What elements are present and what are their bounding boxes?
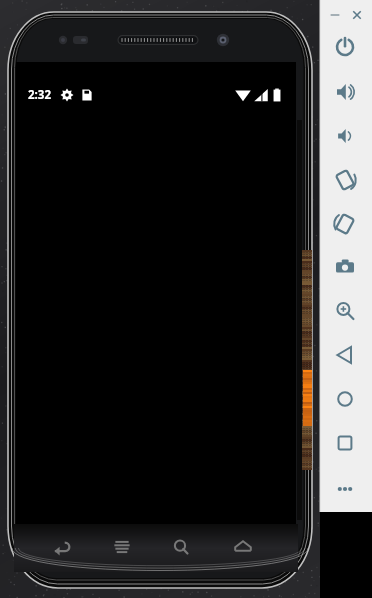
button[interactable]: Search bbox=[152, 524, 210, 572]
button[interactable]: Minimize bbox=[326, 4, 346, 26]
button[interactable]: Volume up bbox=[322, 70, 372, 114]
button[interactable]: Volume down bbox=[322, 114, 372, 158]
button[interactable]: Home bbox=[322, 377, 372, 421]
button[interactable]: Home bbox=[212, 524, 296, 572]
button[interactable]: Take screenshot bbox=[322, 246, 372, 289]
button[interactable]: Back bbox=[17, 524, 82, 572]
button[interactable]: Zoom bbox=[322, 289, 372, 333]
button[interactable]: Rotate left bbox=[322, 158, 372, 202]
button[interactable]: Power bbox=[322, 26, 372, 68]
button[interactable]: More bbox=[322, 467, 372, 511]
button[interactable]: Menu bbox=[92, 524, 152, 572]
button[interactable]: Overview bbox=[322, 421, 372, 465]
button[interactable]: Back bbox=[322, 333, 372, 377]
button[interactable]: Close bbox=[348, 4, 370, 26]
button[interactable]: Rotate right bbox=[322, 202, 372, 246]
